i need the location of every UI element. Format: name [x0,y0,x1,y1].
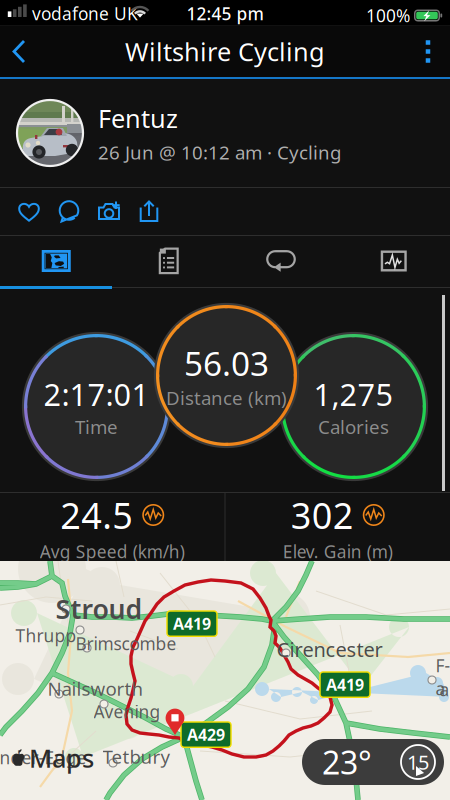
button[interactable]: Comment [49,188,89,235]
button[interactable]: Charts [337,236,450,286]
staticText: Elev. Gain (m) [283,540,393,563]
staticText: 23° [322,741,372,783]
button[interactable]: Back [0,28,39,74]
staticText: A429 [187,724,225,745]
button[interactable]: More options [406,28,450,74]
staticText: Fa [435,654,450,700]
staticText: Distance (km) [166,385,287,410]
button[interactable]: Like [9,188,49,235]
staticText: vodafone UK [32,2,138,25]
staticText: 100% [366,4,410,27]
button[interactable]: Add photo [89,188,129,235]
staticText: 302 [291,491,354,539]
button[interactable]: Photos [0,236,112,286]
staticText: Calories [318,414,389,439]
staticText: Tetbury [102,744,170,769]
staticText: Wiltshire Cycling [125,35,325,68]
staticText: 12:45 pm [186,2,263,25]
staticText: 56.03 [184,341,269,385]
staticText: 26 Jun @ 10:12 am · Cycling [98,140,341,165]
button[interactable]: Laps [225,236,337,286]
staticText: 2:17:01 [43,374,149,414]
button[interactable]: Share [129,188,169,235]
staticText: Stroud [55,591,142,626]
button[interactable]: Summary [112,236,225,286]
staticText: 1,275 [313,374,393,414]
staticText: nder-Edge [0,746,86,769]
staticText: Thrupp [15,624,76,647]
staticText: 24.5 [60,491,133,539]
staticText: A419 [173,613,211,634]
staticText: Avg Speed (km/h) [40,540,185,563]
staticText: Nailsworth [47,676,143,701]
staticText: Cirencester [276,636,382,663]
staticText: Avening [93,700,160,723]
staticText: a [439,678,449,701]
staticText: Maps [29,741,94,775]
staticText: Fentuz [98,101,178,135]
staticText: 15 [407,749,429,775]
staticText: Time [75,414,118,439]
staticText: A419 [326,674,364,695]
staticText: Brimscombe [75,632,176,655]
staticText: Cricklade [367,742,441,765]
